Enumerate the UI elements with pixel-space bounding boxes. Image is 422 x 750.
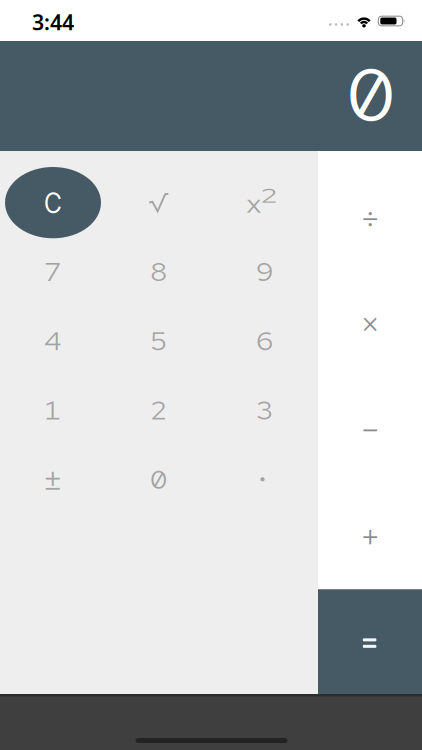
button[interactable]: 1 xyxy=(0,376,106,445)
button[interactable]: C xyxy=(0,168,106,237)
button[interactable]: 9 xyxy=(212,237,318,306)
button[interactable]: 7 xyxy=(0,237,106,306)
button[interactable]: Equals xyxy=(318,589,422,694)
staticText: 3 xyxy=(257,393,273,427)
button[interactable]: x squared xyxy=(212,168,318,237)
staticText: 2 xyxy=(151,393,167,427)
button[interactable]: 3 xyxy=(212,376,318,445)
staticText: 9 xyxy=(257,255,273,289)
staticText: 4 xyxy=(45,324,61,358)
button[interactable]: ÷ xyxy=(318,165,422,271)
staticText: × xyxy=(361,304,379,345)
staticText: 5 xyxy=(151,324,167,358)
staticText: 0 xyxy=(350,48,393,142)
staticText: 3:44 xyxy=(32,8,74,36)
staticText: 2 xyxy=(263,182,275,209)
button[interactable]: 0 xyxy=(106,445,212,514)
staticText: 1 xyxy=(45,393,61,427)
button[interactable]: 6 xyxy=(212,306,318,376)
staticText: − xyxy=(361,410,379,451)
staticText: 0 xyxy=(151,462,167,497)
staticText: + xyxy=(361,516,379,557)
button[interactable]: 4 xyxy=(0,306,106,376)
staticText: 8 xyxy=(151,255,167,289)
button[interactable]: 8 xyxy=(106,237,212,306)
staticText: 7 xyxy=(45,255,61,289)
staticText: ÷ xyxy=(361,198,379,239)
button[interactable]: 2 xyxy=(106,376,212,445)
button[interactable]: ± xyxy=(0,445,106,514)
button[interactable]: − xyxy=(318,377,422,483)
staticText: 6 xyxy=(257,324,273,358)
staticText: C xyxy=(44,183,62,222)
button[interactable]: + xyxy=(318,483,422,589)
button[interactable]: × xyxy=(318,271,422,377)
button[interactable]: 5 xyxy=(106,306,212,376)
staticText: ± xyxy=(44,460,62,499)
button[interactable]: Square root xyxy=(106,168,212,237)
staticText: x xyxy=(246,186,262,221)
